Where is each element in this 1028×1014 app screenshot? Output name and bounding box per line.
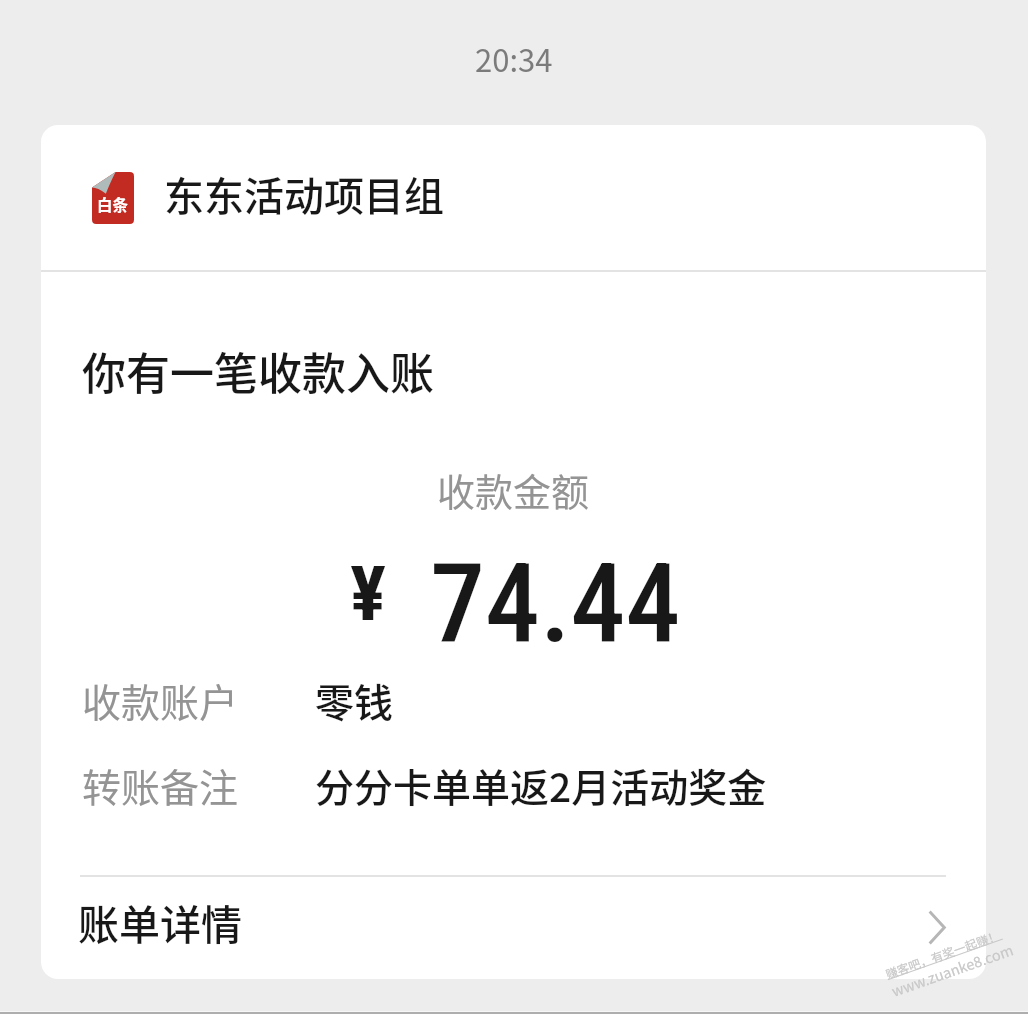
button[interactable]: 白条: [41, 125, 986, 270]
button[interactable]: 账单详情: [41, 874, 986, 979]
staticText: 20:34: [475, 36, 553, 81]
staticText: 白条: [97, 193, 129, 215]
staticText: 转账备注: [82, 757, 315, 813]
other: 查看账单详情: [929, 911, 946, 944]
staticText: www.zuanke8.com: [888, 938, 1016, 1001]
staticText: 分分卡单单返2月活动奖金: [315, 757, 767, 813]
staticText: 零钱: [315, 672, 394, 728]
staticText: 74.44: [430, 539, 681, 668]
staticText: ¥: [350, 549, 387, 638]
staticText: 你有一笔收款入账: [82, 339, 434, 403]
staticText: 赚客吧，有奖一起赚！: [883, 926, 1003, 982]
staticText: 账单详情: [78, 892, 242, 951]
staticText: 收款金额: [437, 462, 590, 517]
staticText: 收款账户: [82, 672, 315, 728]
staticText: 东东活动项目组: [164, 165, 444, 223]
